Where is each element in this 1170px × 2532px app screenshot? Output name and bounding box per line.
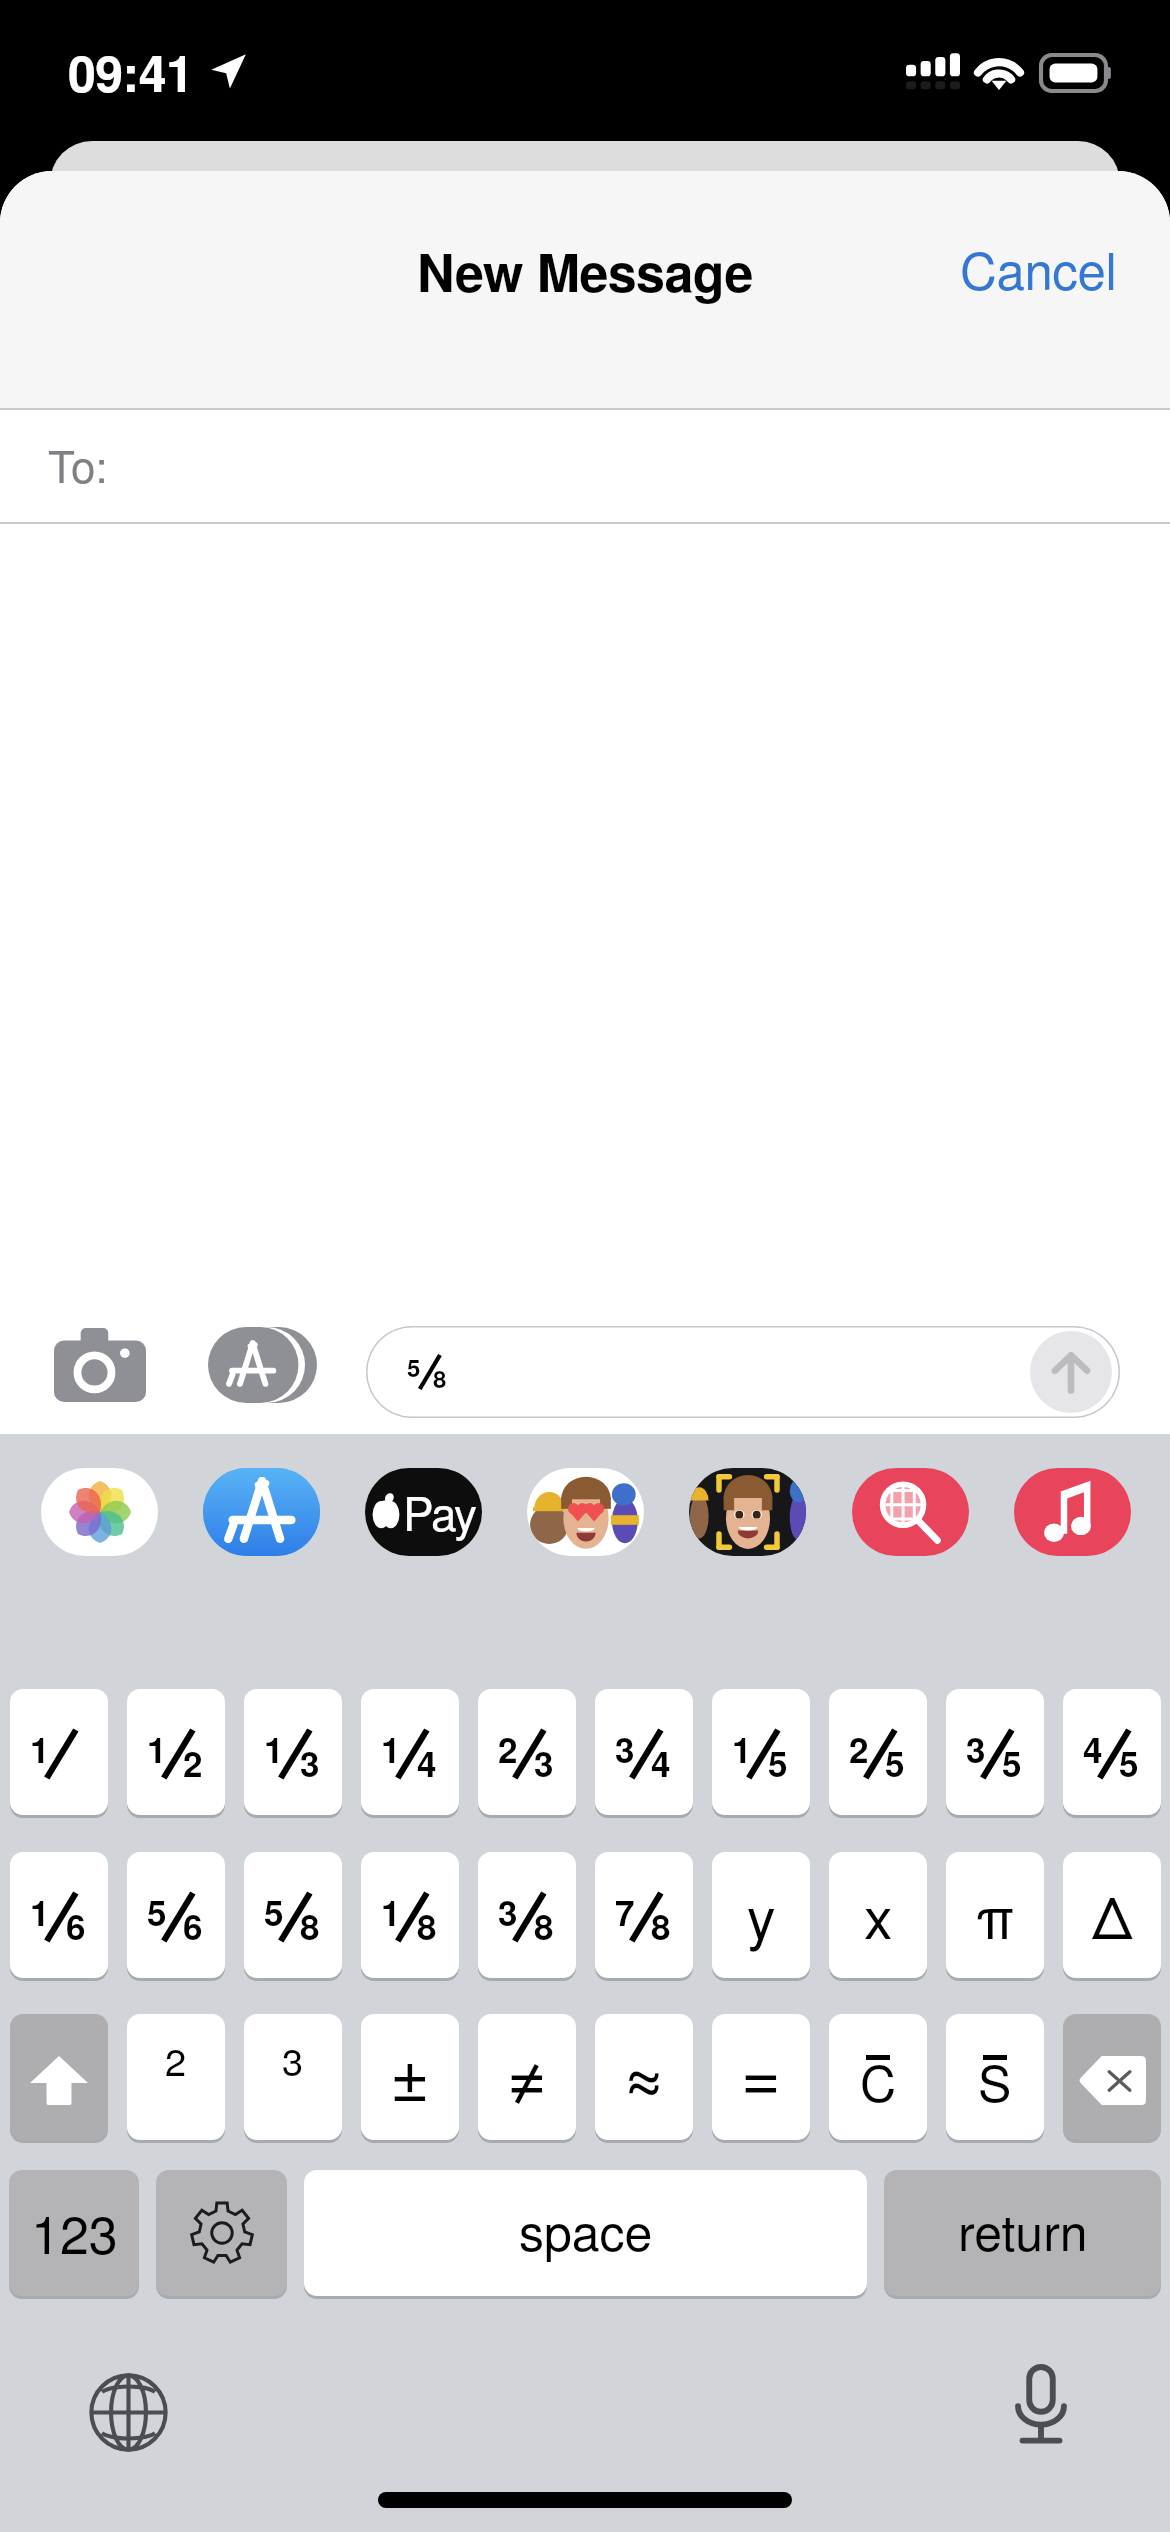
staticText: Δ (1092, 1874, 1133, 1956)
staticText: 3 (282, 2032, 304, 2086)
button[interactable]: ≈ (595, 2014, 693, 2140)
staticText: 2 (498, 1724, 518, 1772)
staticText: 123 (31, 2194, 118, 2268)
staticText: 3 (300, 1738, 320, 1786)
staticText: Pay (403, 1478, 476, 1544)
staticText: 4 (1083, 1724, 1103, 1772)
staticText: 3 (534, 1738, 554, 1786)
staticText: 6 (183, 1901, 203, 1949)
staticText: 2 (183, 1738, 203, 1786)
button[interactable]: = (712, 2014, 810, 2140)
staticText: 2 (849, 1724, 869, 1772)
button[interactable]: Cancel (920, 215, 1170, 324)
button[interactable]: App 0 (41, 1468, 158, 1556)
staticText: 3 (615, 1724, 635, 1772)
button[interactable]: C (829, 2014, 927, 2140)
button[interactable]: 7 (595, 1852, 693, 1978)
button[interactable]: 1 (361, 1689, 459, 1815)
staticText: 3 (498, 1887, 518, 1935)
button[interactable]: App 4 (689, 1468, 806, 1556)
button[interactable]: 3 (946, 1689, 1044, 1815)
staticText: π (976, 1874, 1015, 1956)
button[interactable]: ± (361, 2014, 459, 2140)
button[interactable]: 3 (244, 2014, 342, 2140)
button[interactable]: 1 (244, 1689, 342, 1815)
staticText: 4 (417, 1738, 437, 1786)
button[interactable]: y (712, 1852, 810, 1978)
button[interactable]: App 5 (852, 1468, 969, 1556)
button[interactable]: Δ (1063, 1852, 1161, 1978)
staticText: 7 (615, 1887, 635, 1935)
button[interactable]: space (304, 2170, 867, 2296)
staticText: 8 (433, 1361, 447, 1395)
staticText: 1 (30, 1724, 50, 1772)
button[interactable]: App 3 (527, 1468, 644, 1556)
staticText: 1 (381, 1724, 401, 1772)
button[interactable]: 3 (595, 1689, 693, 1815)
staticText: 3 (966, 1724, 986, 1772)
staticText: 5 (885, 1738, 905, 1786)
button[interactable]: Shift (10, 2014, 108, 2140)
button[interactable]: 5 (366, 1326, 1120, 1418)
staticText: 1 (30, 1887, 50, 1935)
button[interactable]: To: (0, 410, 1170, 524)
staticText: 1 (147, 1724, 167, 1772)
staticText: 1 (264, 1724, 284, 1772)
staticText: 5 (1119, 1738, 1139, 1786)
staticText: 8 (300, 1901, 320, 1949)
button[interactable]: 5 (127, 1852, 225, 1978)
button[interactable]: 1 (10, 1689, 108, 1815)
staticText: x (864, 1874, 893, 1956)
staticText: To: (48, 432, 108, 495)
staticText: space (519, 2194, 653, 2266)
button[interactable]: Send (1030, 1331, 1112, 1413)
button[interactable]: 1 (712, 1689, 810, 1815)
button[interactable]: S (946, 2014, 1044, 2140)
button[interactable]: 2 (127, 2014, 225, 2140)
staticText: C (860, 2045, 897, 2105)
staticText: 8 (417, 1901, 437, 1949)
staticText: 5 (768, 1738, 788, 1786)
staticText: 09:41 (68, 36, 194, 108)
button[interactable]: App 1 (203, 1468, 320, 1556)
staticText: 1 (732, 1724, 752, 1772)
button[interactable]: 1 (361, 1852, 459, 1978)
staticText: Cancel (960, 231, 1117, 304)
staticText: New Message (417, 233, 753, 307)
staticText: 8 (534, 1901, 554, 1949)
button[interactable]: iMessage apps (190, 1310, 335, 1420)
button[interactable]: Take photo (30, 1310, 170, 1420)
button[interactable]: Delete (1063, 2014, 1161, 2140)
staticText: return (958, 2194, 1088, 2266)
button[interactable]: 1 (127, 1689, 225, 1815)
button[interactable]: 5 (244, 1852, 342, 1978)
button[interactable]: 3 (478, 1852, 576, 1978)
staticText: ≈ (622, 2023, 666, 2120)
staticText: 5 (407, 1350, 421, 1384)
button[interactable]: 2 (478, 1689, 576, 1815)
staticText: S (978, 2045, 1012, 2105)
button[interactable]: ≠ (478, 2014, 576, 2140)
button[interactable]: App 6 (1014, 1468, 1131, 1556)
staticText: 4 (651, 1738, 671, 1786)
staticText: 1 (381, 1887, 401, 1935)
staticText: y (747, 1874, 776, 1956)
staticText: 5 (1002, 1738, 1022, 1786)
staticText: 5 (147, 1887, 167, 1935)
button[interactable]: Next keyboard (88, 2372, 168, 2452)
staticText: = (741, 2023, 781, 2120)
button[interactable]: 1 (10, 1852, 108, 1978)
button[interactable]: 2 (829, 1689, 927, 1815)
staticText: ≠ (507, 2023, 547, 2120)
button[interactable]: return (884, 2170, 1161, 2296)
staticText: 2 (165, 2032, 187, 2086)
button[interactable]: x (829, 1852, 927, 1978)
button[interactable]: App 2 (365, 1468, 482, 1556)
staticText: 8 (651, 1901, 671, 1949)
button[interactable]: 4 (1063, 1689, 1161, 1815)
button[interactable]: Dictate (1001, 2367, 1081, 2447)
button[interactable]: Keyboard settings (156, 2170, 287, 2296)
button[interactable]: π (946, 1852, 1044, 1978)
button[interactable]: 123 (9, 2170, 139, 2296)
staticText: ± (390, 2023, 430, 2120)
